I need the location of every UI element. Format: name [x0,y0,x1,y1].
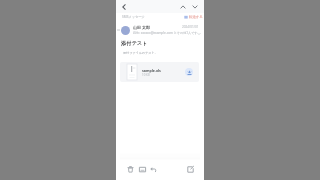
button[interactable]: Next [190,2,200,12]
button[interactable]: Archive [137,164,148,175]
staticText: 転送する [189,15,203,19]
staticText: sample.xls [142,68,161,73]
button[interactable]: 転送する [184,15,203,19]
button[interactable]: Download [185,68,193,76]
staticText: 2024/01/01 [182,25,199,29]
staticText: 添付ファイルのテスト。 [123,51,158,55]
button[interactable]: sample.xls [120,62,199,82]
staticText: 山田 太郎 [133,25,151,30]
button[interactable]: Reply [148,164,159,175]
button[interactable]: Previous [178,2,188,12]
staticText: 添付テスト [121,40,148,47]
staticText: 10 KB [142,73,150,77]
staticText: 宛先: xxxxxx@example.com とその他1人です [133,31,198,35]
button[interactable]: Delete [125,164,136,175]
button[interactable]: Compose [185,164,196,175]
button[interactable]: Back [119,2,129,12]
staticText: SMSメッセージ [122,15,145,19]
